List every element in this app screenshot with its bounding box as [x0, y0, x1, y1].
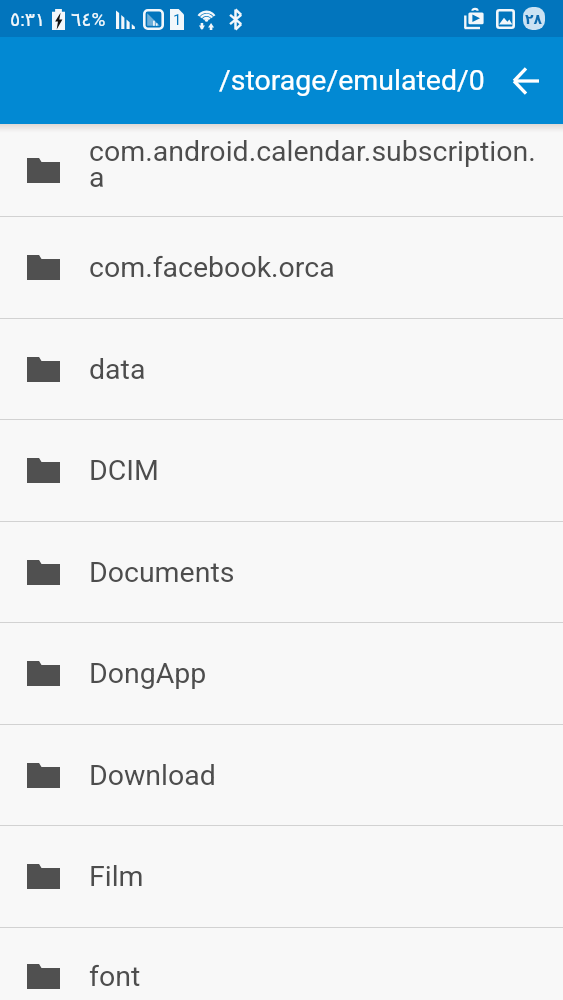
staticText: /storage/emulated/0 — [219, 64, 485, 97]
staticText: com.android.calendar.subscription. — [89, 135, 536, 168]
staticText: Film — [89, 860, 539, 893]
staticText: ٦٤% — [71, 8, 106, 30]
staticText: font — [89, 960, 539, 993]
button[interactable]: Film — [0, 826, 563, 927]
button[interactable]: font — [0, 940, 563, 1000]
staticText: Download — [89, 759, 539, 792]
staticText: ٥:٣١ — [10, 8, 46, 30]
staticText: 1 — [173, 11, 182, 29]
staticText: com.facebook.orca — [89, 251, 539, 284]
button[interactable]: Download — [0, 725, 563, 825]
button[interactable]: com.android.calendar.subscription. — [0, 124, 563, 216]
button[interactable]: DongApp — [0, 623, 563, 724]
button[interactable]: Back — [500, 55, 552, 107]
button[interactable]: Documents — [0, 522, 563, 622]
staticText: DCIM — [89, 454, 539, 487]
button[interactable]: com.facebook.orca — [0, 217, 563, 318]
staticText: a — [89, 161, 105, 194]
staticText: Documents — [89, 556, 539, 589]
staticText: data — [89, 353, 539, 386]
staticText: DongApp — [89, 657, 539, 690]
button[interactable]: DCIM — [0, 420, 563, 521]
button[interactable]: data — [0, 319, 563, 419]
staticText: ٢٨ — [525, 11, 543, 27]
